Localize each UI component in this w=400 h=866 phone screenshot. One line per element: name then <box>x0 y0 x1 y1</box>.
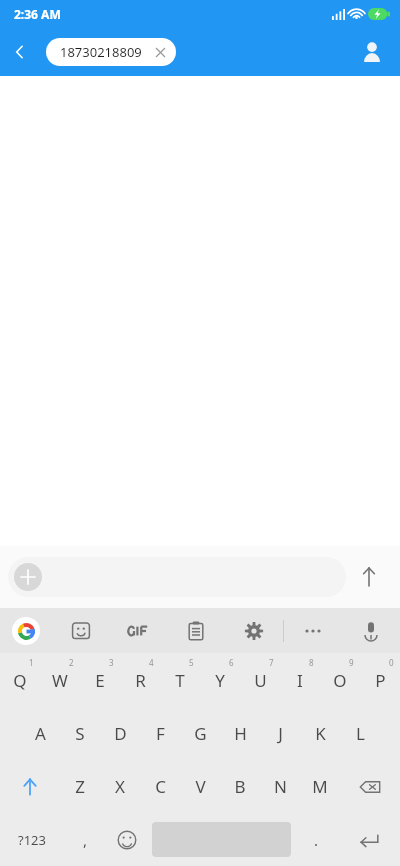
staticText: V <box>195 775 206 798</box>
button[interactable]: E <box>80 653 120 707</box>
button[interactable]: K <box>300 707 340 760</box>
staticText: J <box>278 722 283 745</box>
staticText: L <box>356 722 365 745</box>
button[interactable]: Shift <box>0 760 60 813</box>
staticText: , <box>83 830 88 850</box>
staticText: Y <box>215 669 225 692</box>
staticText: G <box>194 722 207 745</box>
staticText: D <box>114 722 127 745</box>
button[interactable]: Back <box>0 32 40 72</box>
button[interactable]: F <box>140 707 180 760</box>
button[interactable]: D <box>100 707 140 760</box>
button[interactable]: H <box>220 707 260 760</box>
staticText: 18730218809 <box>60 43 142 61</box>
button[interactable]: Y <box>200 653 240 707</box>
staticText: 9 <box>349 657 354 668</box>
staticText: 2 <box>69 657 74 668</box>
button[interactable]: GIF <box>109 608 167 653</box>
staticText: A <box>35 722 46 745</box>
button[interactable]: Backspace <box>340 760 400 813</box>
button[interactable]: ?123 <box>0 813 64 866</box>
staticText: S <box>75 722 85 745</box>
button[interactable]: Google <box>0 608 52 653</box>
staticText: I <box>297 669 303 692</box>
button[interactable]: N <box>260 760 300 813</box>
staticText: 8 <box>309 657 314 668</box>
staticText: N <box>274 775 287 798</box>
button[interactable]: Voice input <box>342 608 400 653</box>
button[interactable]: L <box>340 707 380 760</box>
button[interactable]: C <box>140 760 180 813</box>
button[interactable]: Remove <box>152 44 168 60</box>
staticText: R <box>135 669 146 692</box>
button[interactable]: Q <box>0 653 40 707</box>
button[interactable]: M <box>300 760 340 813</box>
button[interactable]: Emoji <box>106 813 148 866</box>
button[interactable]: P <box>360 653 400 707</box>
button[interactable]: X <box>100 760 140 813</box>
staticText: 5 <box>189 657 194 668</box>
staticText: 2:36 AM <box>14 6 61 22</box>
staticText: U <box>254 669 267 692</box>
button[interactable]: W <box>40 653 80 707</box>
button[interactable]: U <box>240 653 280 707</box>
staticText: F <box>156 722 165 745</box>
button[interactable]: V <box>180 760 220 813</box>
staticText: . <box>314 830 319 850</box>
button[interactable]: Clipboard <box>167 608 225 653</box>
button[interactable]: R <box>120 653 160 707</box>
button[interactable]: B <box>220 760 260 813</box>
staticText: 7 <box>269 657 274 668</box>
button[interactable]: Z <box>60 760 100 813</box>
staticText: 6 <box>229 657 234 668</box>
staticText: 0 <box>389 657 394 668</box>
button[interactable]: I <box>280 653 320 707</box>
button[interactable]: . <box>295 813 337 866</box>
button[interactable]: Add <box>14 563 42 591</box>
staticText: 1 <box>29 657 34 668</box>
staticText: 4 <box>149 657 154 668</box>
button[interactable]: Stickers <box>52 608 109 653</box>
button[interactable]: J <box>260 707 300 760</box>
staticText: Z <box>75 775 85 798</box>
button[interactable]: S <box>60 707 100 760</box>
button[interactable]: Add <box>8 557 346 597</box>
staticText: W <box>52 669 68 692</box>
button[interactable]: Enter <box>337 813 400 866</box>
staticText: ?123 <box>18 831 46 849</box>
staticText: 3 <box>109 657 114 668</box>
button[interactable]: , <box>64 813 106 866</box>
staticText: X <box>115 775 125 798</box>
staticText: Q <box>13 669 27 692</box>
staticText: O <box>333 669 347 692</box>
button[interactable]: G <box>180 707 220 760</box>
button[interactable]: Contacts <box>352 32 392 72</box>
staticText: M <box>312 775 328 798</box>
button[interactable]: More <box>284 608 342 653</box>
button[interactable]: A <box>20 707 60 760</box>
button[interactable]: Send <box>346 554 392 600</box>
button[interactable]: O <box>320 653 360 707</box>
button[interactable]: 18730218809 <box>46 38 176 66</box>
button[interactable]: Settings <box>225 608 283 653</box>
staticText: K <box>315 722 326 745</box>
staticText: P <box>375 669 386 692</box>
staticText: E <box>95 669 105 692</box>
staticText: B <box>234 775 246 798</box>
staticText: C <box>155 775 166 798</box>
button[interactable]: T <box>160 653 200 707</box>
staticText: H <box>234 722 247 745</box>
staticText: T <box>175 669 185 692</box>
